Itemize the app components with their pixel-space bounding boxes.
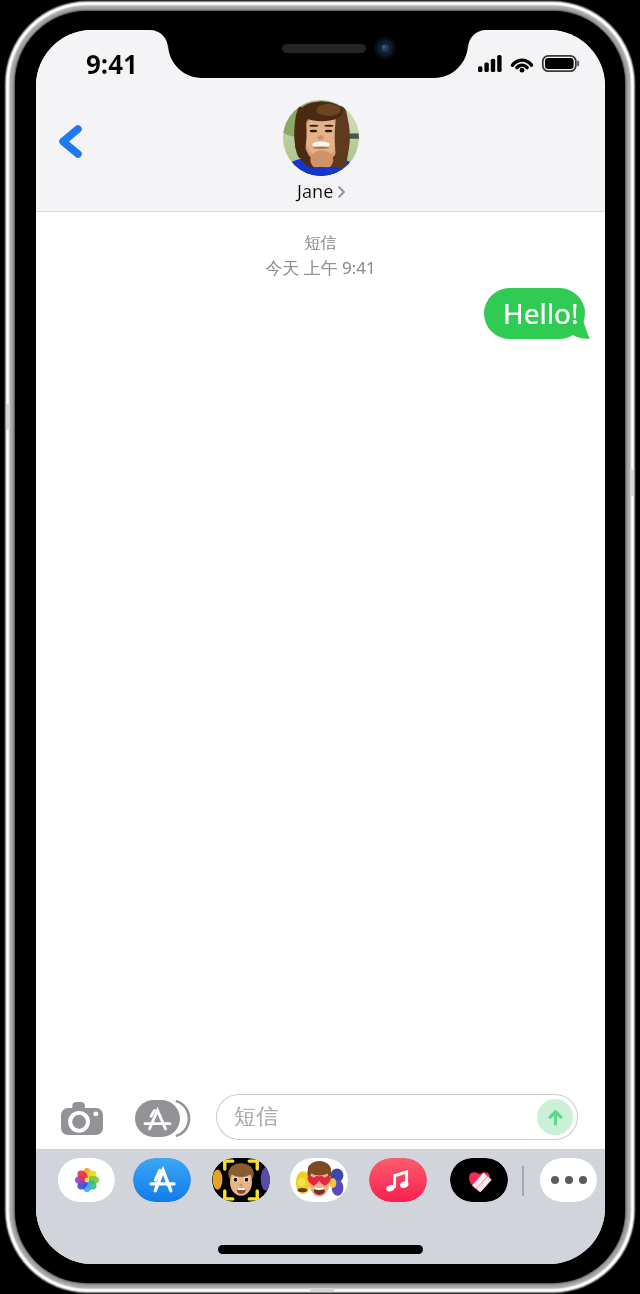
button[interactable] — [450, 1158, 508, 1202]
button[interactable]: Apps — [135, 1097, 193, 1139]
button[interactable]: 短信 — [216, 1094, 578, 1140]
button[interactable] — [539, 1158, 597, 1202]
button[interactable]: Send — [537, 1099, 573, 1135]
staticText: Jane — [297, 179, 334, 204]
button[interactable] — [290, 1158, 348, 1202]
button[interactable] — [57, 1158, 115, 1202]
staticText: 今天 上午 9:41 — [36, 256, 605, 279]
button[interactable]: Back — [47, 118, 93, 164]
staticText: 短信 — [234, 1103, 278, 1131]
button[interactable] — [369, 1158, 427, 1202]
button[interactable] — [212, 1158, 270, 1202]
button[interactable]: Jane — [283, 100, 359, 204]
staticText: Hello! — [503, 294, 579, 332]
staticText: 短信 — [36, 233, 605, 253]
button[interactable] — [133, 1158, 191, 1202]
button[interactable]: Camera — [60, 1099, 104, 1137]
staticText: 9:41 — [86, 46, 138, 81]
